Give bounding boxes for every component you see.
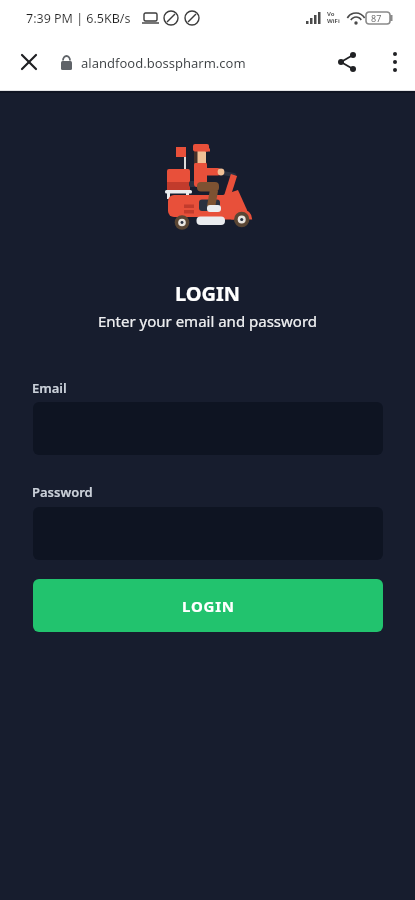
button[interactable] [382, 49, 408, 75]
staticText: Email [32, 379, 67, 397]
staticText: Password [32, 483, 93, 501]
button[interactable]: LOGIN [33, 579, 383, 632]
button[interactable] [334, 49, 360, 75]
staticText: Enter your email and password [0, 311, 415, 331]
button[interactable] [16, 49, 42, 75]
staticText: alandfood.bosspharm.com [81, 54, 246, 72]
staticText: 87 [371, 12, 382, 24]
staticText: 7:39 PM | 6.5KB/s [26, 10, 131, 27]
staticText: LOGIN [182, 596, 235, 616]
staticText: LOGIN [0, 280, 415, 307]
staticText: Vo WiFi [327, 10, 340, 25]
